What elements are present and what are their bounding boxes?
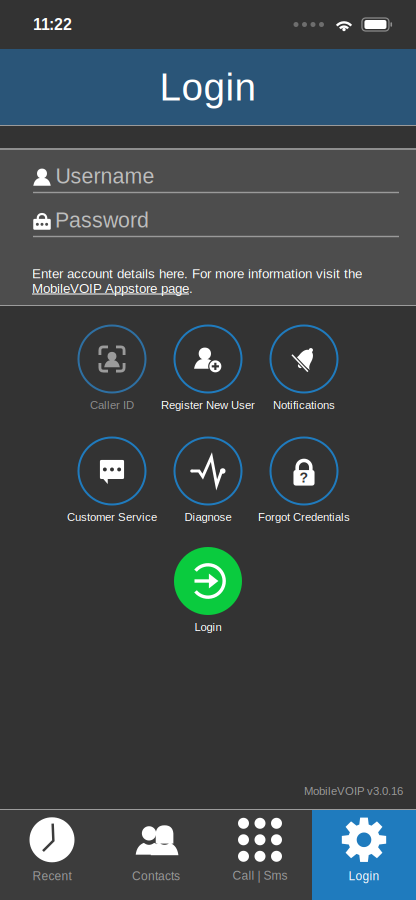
button[interactable]: Caller ID <box>42 322 182 418</box>
button[interactable]: Password <box>0 194 416 240</box>
staticText: Login <box>159 65 256 109</box>
button[interactable]: Customer Service <box>42 434 182 530</box>
staticText: MobileVOIP Appstore page <box>32 281 189 296</box>
staticText: Login <box>348 869 379 883</box>
staticText: Diagnose <box>184 511 231 523</box>
button[interactable]: Login <box>138 544 278 640</box>
staticText: Contacts <box>132 869 180 883</box>
staticText: Customer Service <box>67 511 157 523</box>
staticText: Recent <box>32 869 71 883</box>
button[interactable]: MobileVOIP Appstore page <box>32 281 189 296</box>
button[interactable]: ? <box>234 434 374 530</box>
button[interactable]: Diagnose <box>138 434 278 530</box>
button[interactable]: Register New User <box>138 322 278 418</box>
staticText: 11:22 <box>33 16 72 33</box>
button[interactable]: Notifications <box>234 322 374 418</box>
staticText: Call | Sms <box>232 869 287 882</box>
staticText: Username <box>55 164 154 188</box>
staticText: ? <box>299 470 308 485</box>
staticText: MobileVOIP v3.0.16 <box>304 785 403 797</box>
button[interactable]: Call | Sms <box>208 810 312 900</box>
staticText: Enter account details here. For more inf… <box>32 266 362 281</box>
button[interactable]: Username <box>0 150 416 196</box>
staticText: Register New User <box>161 399 255 411</box>
staticText: Password <box>55 208 149 232</box>
staticText: Caller ID <box>90 399 134 411</box>
staticText: Login <box>194 621 221 633</box>
button[interactable]: Login <box>312 810 416 900</box>
staticText: Notifications <box>273 399 335 411</box>
button[interactable]: Recent <box>0 810 104 900</box>
button[interactable]: Contacts <box>104 810 208 900</box>
staticText: . <box>189 281 193 296</box>
staticText: Forgot Credentials <box>258 511 350 523</box>
